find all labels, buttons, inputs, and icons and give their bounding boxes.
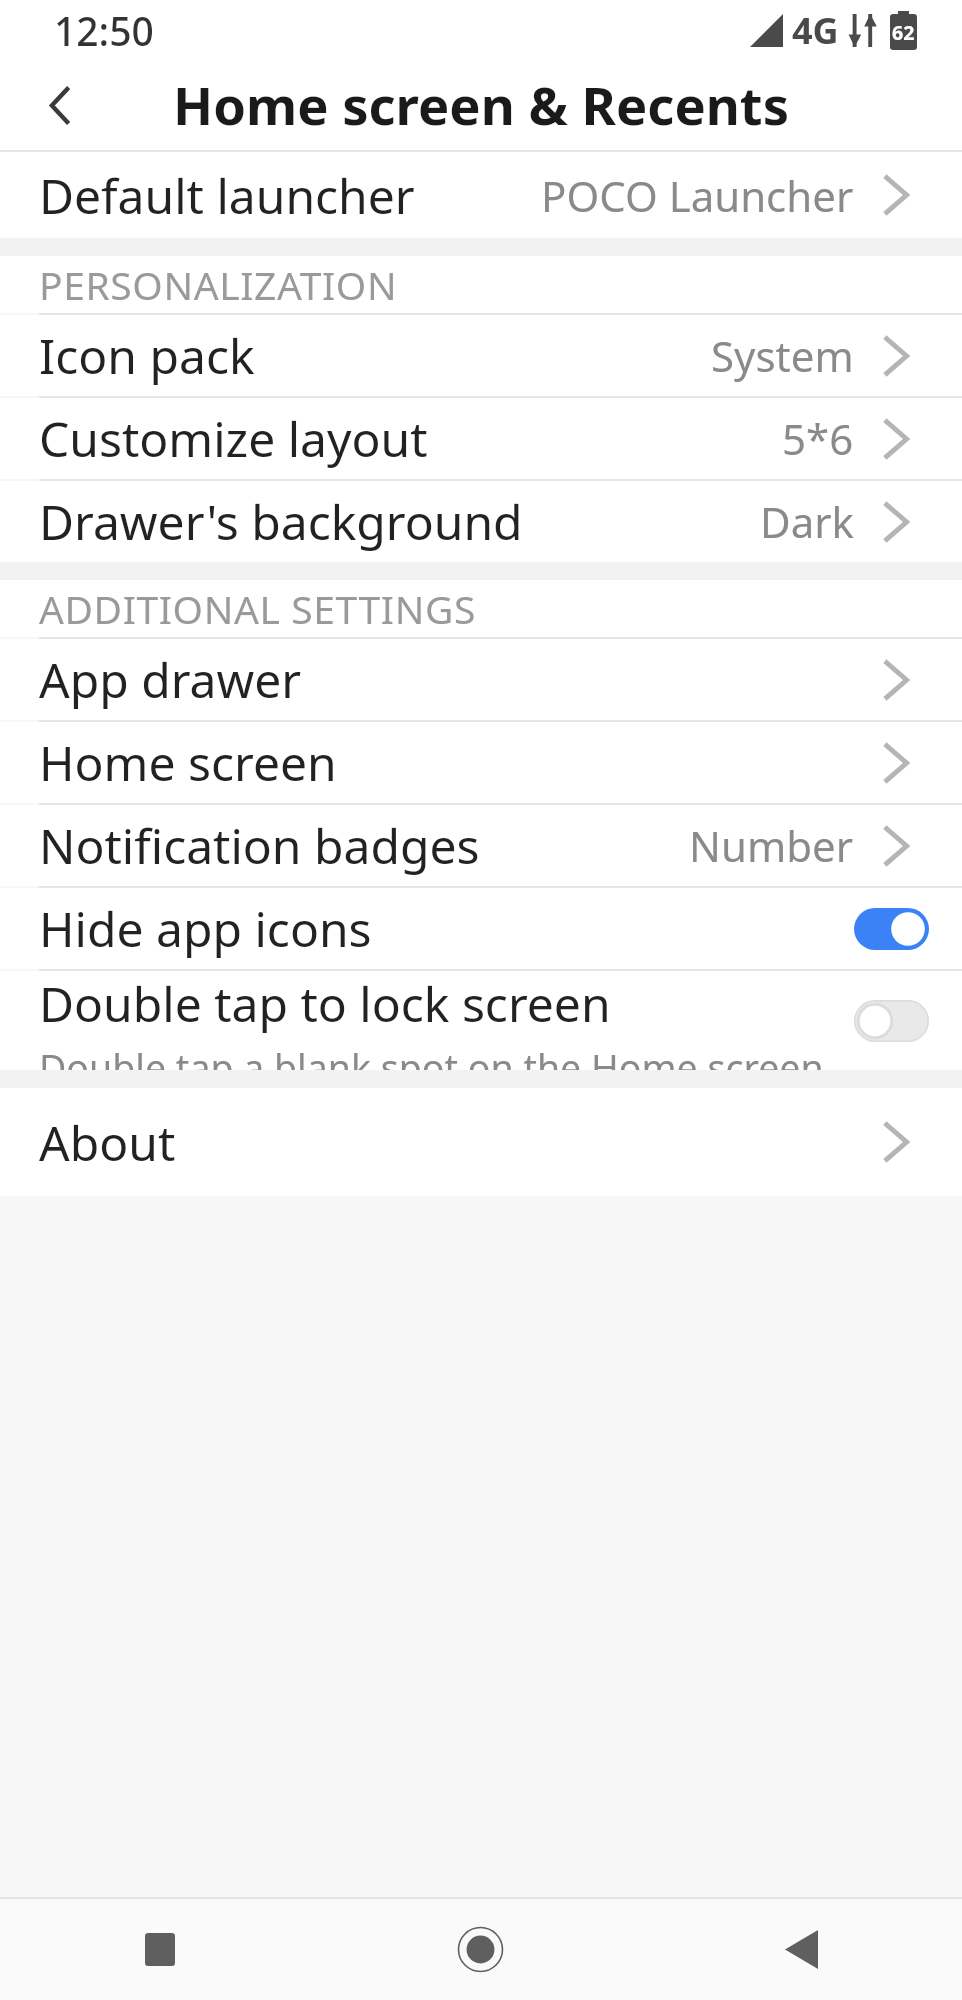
button[interactable]: Icon pack [0, 315, 962, 396]
staticText: Icon pack [39, 323, 255, 388]
staticText: POCO Launcher [541, 167, 854, 224]
staticText: 5*6 [782, 410, 854, 467]
staticText: 12:50 [54, 4, 154, 57]
staticText: 4G [792, 6, 839, 55]
button[interactable]: Hide app icons [0, 888, 962, 969]
staticText: Double tap a blank spot on the Home scre… [39, 1042, 854, 1070]
button[interactable]: App drawer [0, 639, 962, 720]
staticText: 62 [892, 19, 915, 46]
staticText: Hide app icons [39, 896, 372, 961]
button[interactable]: On [854, 908, 929, 950]
staticText: Notification badges [39, 813, 480, 878]
staticText: Home screen [39, 730, 337, 795]
staticText: System [711, 327, 854, 384]
staticText: Drawer's background [39, 489, 523, 554]
button[interactable]: Home [320, 1899, 641, 2000]
button[interactable]: Back [24, 69, 96, 141]
button[interactable]: Customize layout [0, 398, 962, 479]
button[interactable]: Notification badges [0, 805, 962, 886]
button[interactable]: Default launcher [0, 152, 962, 238]
button[interactable]: Recents [0, 1899, 320, 2000]
staticText: PERSONALIZATION [39, 258, 398, 311]
button[interactable]: About [0, 1088, 962, 1196]
staticText: Customize layout [39, 406, 428, 471]
staticText: Home screen & Recents [173, 69, 789, 141]
button[interactable]: Home screen [0, 722, 962, 803]
button[interactable]: Double tap to lock screen [0, 971, 962, 1070]
button[interactable]: Back [641, 1899, 962, 2000]
staticText: Default launcher [39, 163, 415, 228]
staticText: ADDITIONAL SETTINGS [39, 582, 476, 635]
button[interactable]: Off [854, 1000, 929, 1042]
staticText: About [39, 1110, 176, 1175]
staticText: Dark [760, 493, 854, 550]
staticText: Number [689, 817, 854, 874]
button[interactable]: Drawer's background [0, 481, 962, 562]
staticText: Double tap to lock screen [39, 971, 611, 1036]
staticText: App drawer [39, 647, 302, 712]
